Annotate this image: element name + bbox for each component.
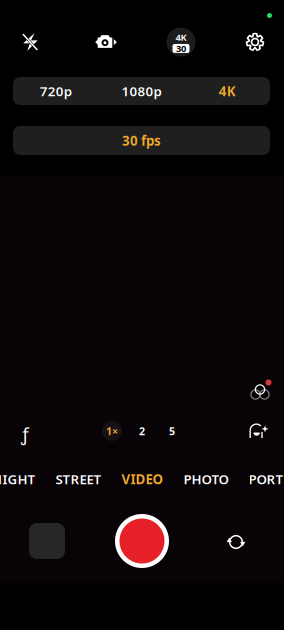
staticText: STREET — [55, 470, 101, 488]
button[interactable]: 1× — [102, 421, 122, 441]
button[interactable]: Flash off — [10, 25, 50, 59]
button[interactable]: 5 — [162, 421, 182, 441]
button[interactable]: Filters — [246, 374, 272, 400]
staticText: ƒ — [21, 422, 29, 446]
staticText: 30 — [176, 42, 186, 55]
staticText: 5 — [169, 424, 175, 438]
button[interactable]: Switch camera — [223, 529, 249, 555]
button[interactable]: STREET — [55, 468, 101, 490]
button[interactable]: NIGHT — [0, 468, 35, 490]
button[interactable]: PORTRAIT — [248, 468, 284, 490]
staticText: 4K — [175, 31, 186, 43]
button[interactable]: Record — [115, 514, 169, 568]
staticText: NIGHT — [0, 470, 35, 488]
staticText: 2 — [139, 424, 145, 438]
button[interactable]: Video quality 4K 30 fps — [161, 25, 201, 59]
staticText: 30 fps — [122, 132, 161, 149]
button[interactable]: 2 — [132, 421, 152, 441]
staticText: 1080p — [121, 82, 161, 100]
staticText: PORTRAIT — [248, 470, 284, 488]
staticText: PHOTO — [183, 470, 228, 488]
button[interactable]: Beauty — [246, 418, 272, 444]
button[interactable]: Switch to photo — [86, 25, 126, 59]
staticText: 4K — [219, 82, 236, 100]
staticText: 1× — [106, 424, 118, 438]
button[interactable]: 720p — [13, 77, 99, 105]
button[interactable]: PHOTO — [183, 468, 228, 490]
button[interactable]: 30 fps — [13, 126, 270, 155]
button[interactable]: Settings — [235, 25, 275, 59]
button[interactable]: Aperture — [11, 421, 39, 447]
button[interactable]: VIDEO — [121, 468, 163, 490]
button[interactable]: Last capture — [29, 523, 65, 559]
button[interactable]: 1080p — [99, 77, 184, 105]
button[interactable]: 4K — [184, 77, 270, 105]
staticText: 720p — [40, 82, 72, 100]
staticText: VIDEO — [121, 470, 163, 488]
